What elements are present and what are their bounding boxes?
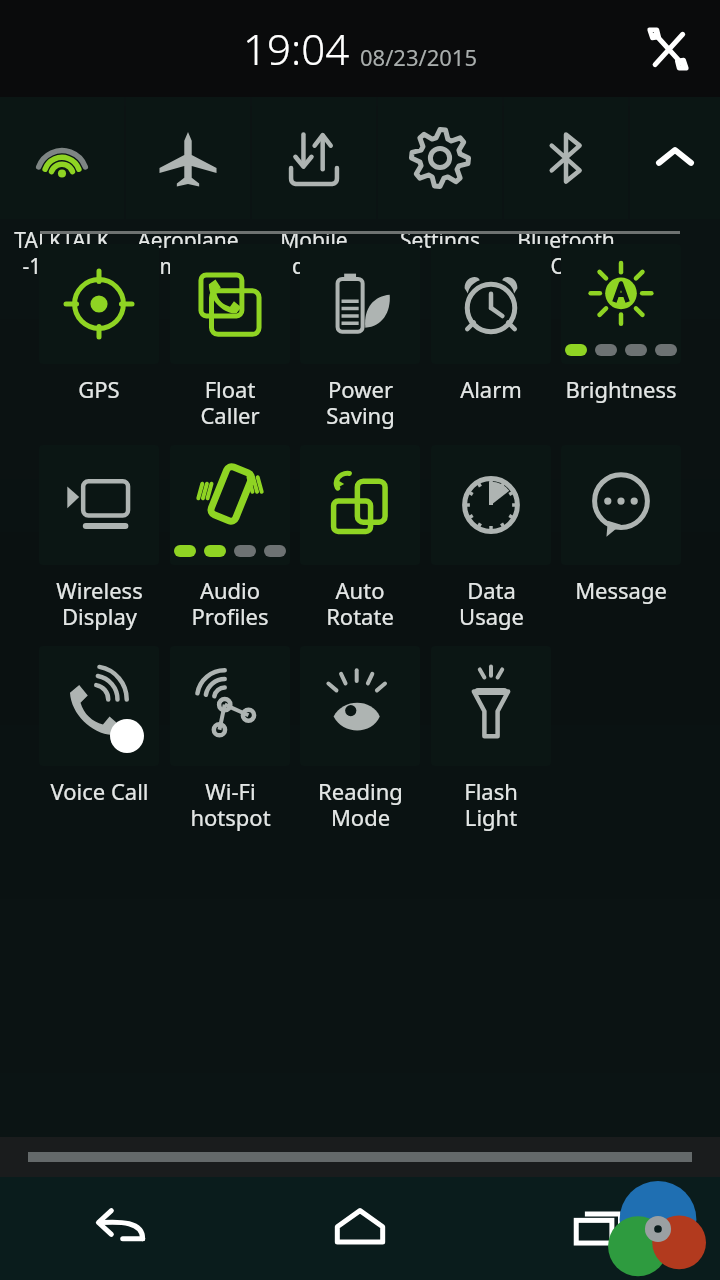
staticText: Reading Mode	[318, 776, 403, 833]
button[interactable]: Alarm	[430, 244, 552, 404]
staticText: Float Caller	[200, 374, 260, 431]
staticText: Voice Call	[50, 776, 149, 806]
button[interactable]: Float Caller	[169, 244, 291, 431]
button[interactable]: Reading Mode	[299, 646, 421, 833]
button[interactable]	[0, 97, 124, 219]
staticText: Message	[575, 575, 667, 605]
staticText: Brightness	[565, 374, 677, 404]
staticText: GPS	[78, 374, 120, 404]
button[interactable]: Back	[0, 1177, 240, 1280]
staticText: Bluetooth Off	[517, 226, 615, 281]
button[interactable]: Expand	[630, 97, 720, 219]
staticText: Flash Light	[464, 776, 518, 833]
button[interactable]: Brightness	[560, 244, 682, 404]
button[interactable]: Wi-Fi hotspot	[169, 646, 291, 833]
staticText: Wi-Fi hotspot	[190, 776, 271, 833]
staticText: 08/23/2015	[360, 42, 478, 72]
staticText: Audio Profiles	[191, 575, 269, 632]
button[interactable]: Flash Light	[430, 646, 552, 833]
button[interactable]: Message	[560, 445, 682, 605]
staticText: TALKTALK -153640	[14, 226, 110, 281]
staticText: Mobile data	[280, 226, 348, 281]
button[interactable]: Power Saving	[299, 244, 421, 431]
button[interactable]: Data Usage	[430, 445, 552, 632]
staticText: 19:04	[243, 20, 350, 77]
button[interactable]: Recents	[480, 1177, 720, 1280]
staticText: Settings	[400, 226, 480, 255]
staticText: Alarm	[460, 374, 522, 404]
button[interactable]: GPS	[38, 244, 160, 404]
button[interactable]: Home	[240, 1177, 480, 1280]
button[interactable]	[126, 97, 250, 219]
button[interactable]: Settings shortcuts	[636, 17, 700, 81]
button[interactable]: Voice Call	[38, 646, 160, 806]
button[interactable]	[252, 97, 376, 219]
button[interactable]: Auto Rotate	[299, 445, 421, 632]
staticText: Data Usage	[459, 575, 524, 632]
button[interactable]: Wireless Display	[38, 445, 160, 632]
button[interactable]: Audio Profiles	[169, 445, 291, 632]
staticText: Auto Rotate	[326, 575, 394, 632]
staticText: Power Saving	[326, 374, 395, 431]
staticText: Wireless Display	[56, 575, 143, 632]
button[interactable]	[378, 97, 502, 219]
staticText: Aeroplane mode	[137, 226, 239, 281]
button[interactable]	[504, 97, 628, 219]
